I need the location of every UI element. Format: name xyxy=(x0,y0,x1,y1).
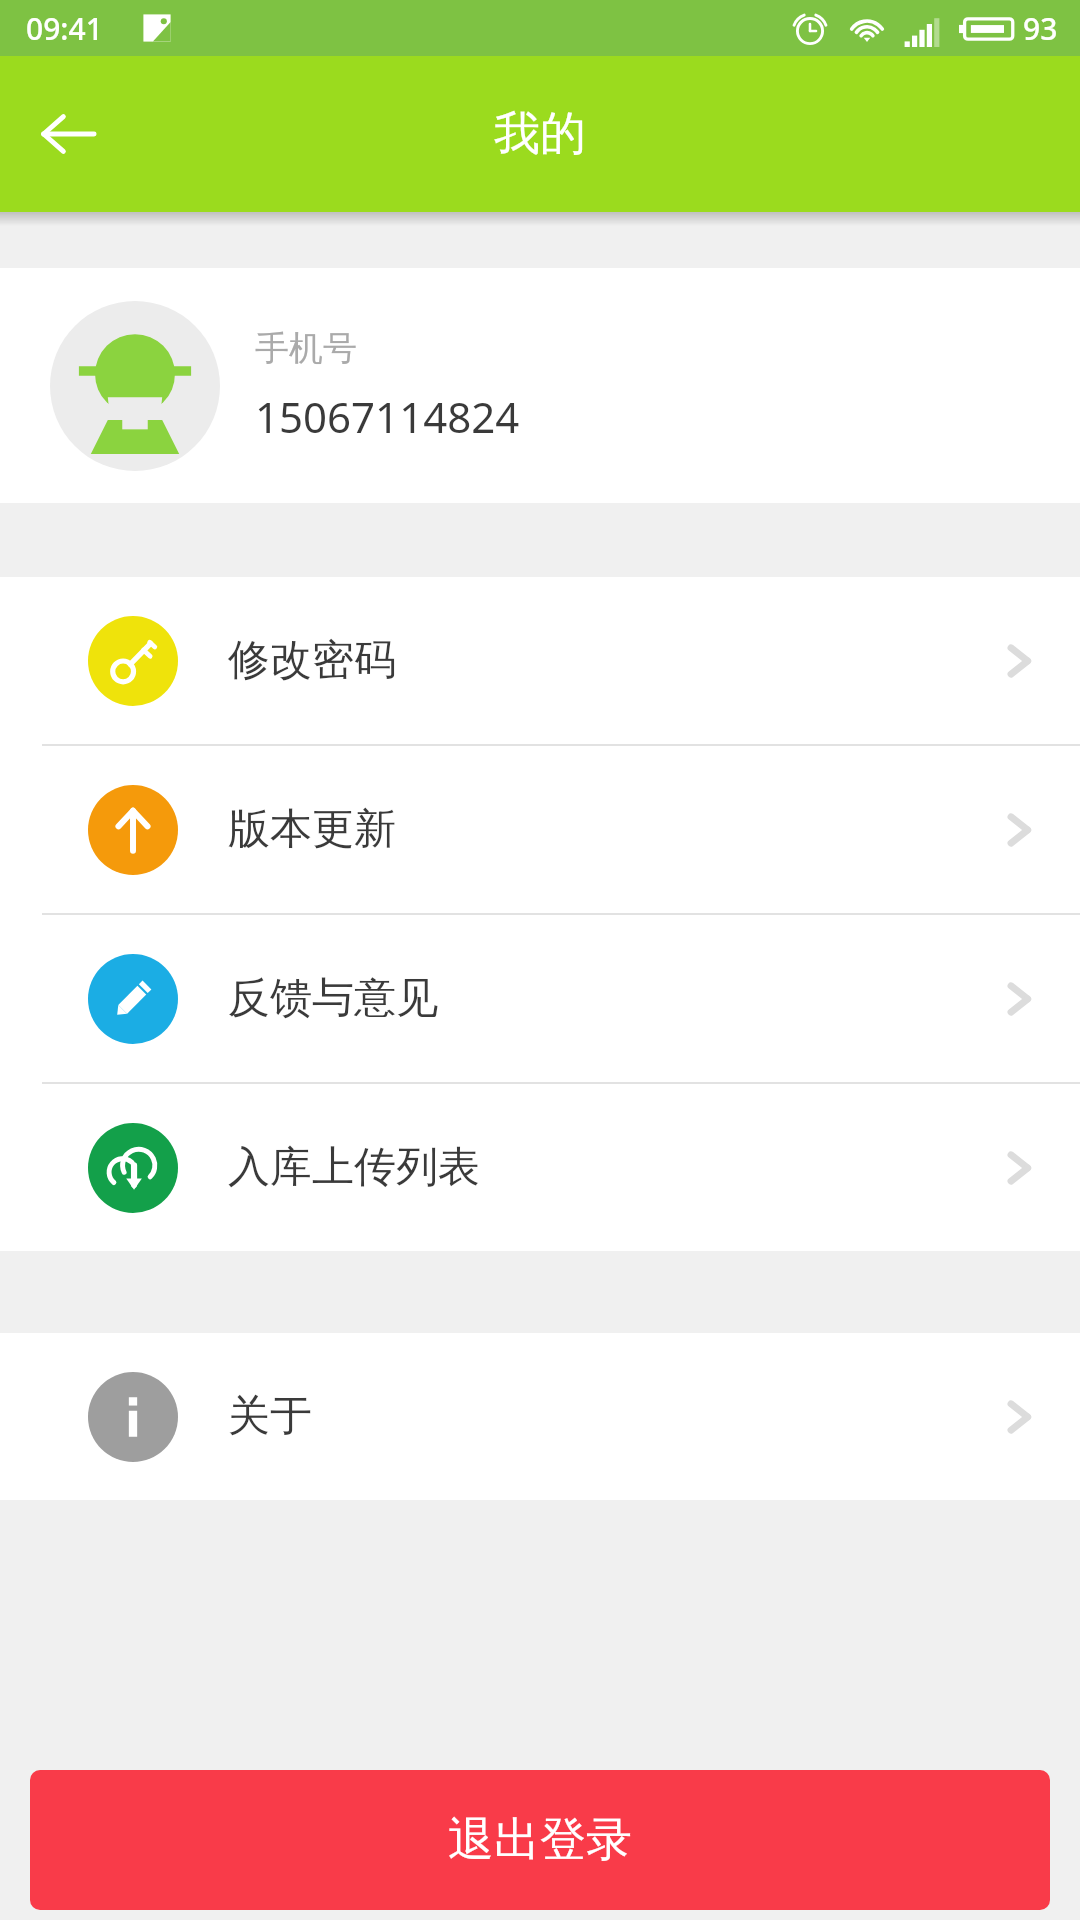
button[interactable]: 关于 xyxy=(0,1333,1080,1500)
staticText: 修改密码 xyxy=(228,634,396,687)
button[interactable]: 反馈与意见 xyxy=(0,915,1080,1082)
staticText: 15067114824 xyxy=(255,388,520,445)
staticText: 09:41 xyxy=(26,8,103,49)
staticText: 版本更新 xyxy=(228,803,396,856)
staticText: 反馈与意见 xyxy=(228,972,438,1025)
button[interactable]: 修改密码 xyxy=(0,577,1080,744)
staticText: 我的 xyxy=(494,105,586,163)
staticText: 手机号 xyxy=(255,327,357,370)
button[interactable]: 退出登录 xyxy=(30,1770,1050,1910)
staticText: 退出登录 xyxy=(448,1811,632,1869)
button[interactable]: 版本更新 xyxy=(0,746,1080,913)
button[interactable]: 入库上传列表 xyxy=(0,1084,1080,1251)
staticText: 关于 xyxy=(228,1390,312,1443)
button[interactable]: 手机号 xyxy=(0,268,1080,503)
staticText: 93 xyxy=(1023,8,1058,49)
staticText: 入库上传列表 xyxy=(228,1141,480,1194)
button[interactable]: Back xyxy=(20,86,116,182)
